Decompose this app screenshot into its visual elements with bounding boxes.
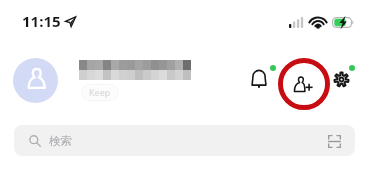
button[interactable]: Add friend xyxy=(278,58,330,110)
button[interactable]: Profile xyxy=(13,58,58,103)
button[interactable]: 検索 xyxy=(14,125,355,156)
button[interactable]: Scan code xyxy=(327,134,341,148)
button[interactable]: Notifications xyxy=(248,67,270,89)
button[interactable]: Settings xyxy=(332,70,351,89)
staticText: 11:15 xyxy=(22,11,61,31)
button[interactable]: Keep xyxy=(81,84,119,101)
staticText: 検索 xyxy=(49,134,72,148)
staticText: Keep xyxy=(89,86,111,98)
